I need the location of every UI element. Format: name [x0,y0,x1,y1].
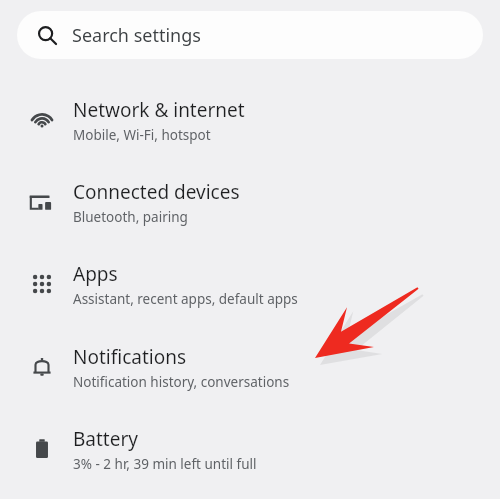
staticText: Search settings [72,23,201,48]
button[interactable]: Apps [0,261,500,325]
staticText: Connected devices [73,179,240,205]
staticText: Notification history, conversations [73,373,290,391]
staticText: Assistant, recent apps, default apps [73,290,298,308]
button[interactable]: Network & internet [0,97,500,161]
button[interactable]: Notifications [0,344,500,408]
button[interactable]: Connected devices [0,179,500,243]
staticText: Battery [73,426,138,452]
staticText: 3% - 2 hr, 39 min left until full [73,455,257,473]
button[interactable]: Search [17,11,483,59]
button[interactable]: Battery [0,426,500,490]
staticText: Mobile, Wi-Fi, hotspot [73,126,211,144]
staticText: Network & internet [73,97,245,123]
other: Search [38,26,57,45]
staticText: Bluetooth, pairing [73,208,188,226]
staticText: Notifications [73,344,187,370]
staticText: Apps [73,261,118,287]
